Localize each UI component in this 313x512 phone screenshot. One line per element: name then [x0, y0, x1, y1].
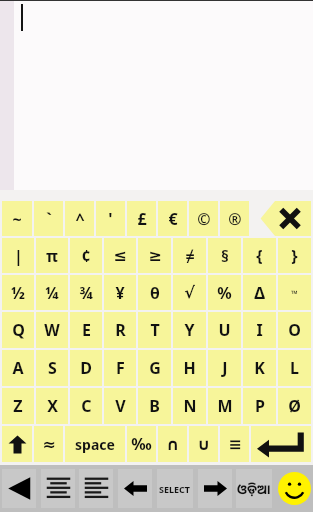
staticText: N: [183, 395, 197, 417]
button[interactable]: ≤: [104, 238, 136, 273]
button[interactable]: ∪: [189, 426, 218, 462]
staticText: J: [222, 357, 228, 379]
button[interactable]: G: [138, 350, 171, 386]
button[interactable]: Emoji: [277, 469, 311, 508]
button[interactable]: ®: [220, 201, 249, 236]
button[interactable]: W: [36, 312, 68, 348]
button[interactable]: §: [208, 238, 241, 273]
button[interactable]: Q: [2, 312, 34, 348]
button[interactable]: H: [173, 350, 206, 386]
button[interactable]: [0, 0, 313, 190]
button[interactable]: ©: [189, 201, 218, 236]
button[interactable]: ^: [65, 201, 94, 236]
button[interactable]: M: [208, 388, 241, 424]
button[interactable]: N: [173, 388, 206, 424]
button[interactable]: ∩: [158, 426, 187, 462]
button[interactable]: C: [70, 388, 102, 424]
button[interactable]: π: [36, 238, 68, 273]
button[interactable]: J: [208, 350, 241, 386]
button[interactable]: `: [34, 201, 63, 236]
staticText: π: [46, 245, 58, 267]
button[interactable]: S: [36, 350, 68, 386]
button[interactable]: ‰: [127, 426, 156, 462]
button[interactable]: ½: [2, 275, 34, 310]
button[interactable]: €: [158, 201, 187, 236]
button[interactable]: V: [104, 388, 136, 424]
button[interactable]: {: [243, 238, 276, 273]
button[interactable]: √: [173, 275, 206, 310]
button[interactable]: Move right: [198, 469, 232, 508]
button[interactable]: ™: [278, 275, 311, 310]
staticText: Q: [12, 319, 25, 341]
button[interactable]: ≡: [220, 426, 249, 462]
staticText: ଓଡ଼ିଆ: [237, 480, 271, 498]
staticText: C: [81, 395, 92, 417]
button[interactable]: ': [96, 201, 125, 236]
staticText: ½: [11, 282, 25, 304]
staticText: SELECT: [159, 483, 191, 495]
staticText: H: [183, 357, 196, 379]
button[interactable]: ¾: [70, 275, 102, 310]
button[interactable]: X: [36, 388, 68, 424]
staticText: ≥: [148, 246, 162, 265]
button[interactable]: L: [278, 350, 311, 386]
button[interactable]: E: [70, 312, 102, 348]
button[interactable]: £: [127, 201, 156, 236]
button[interactable]: K: [243, 350, 276, 386]
button[interactable]: ଓଡ଼ିଆ: [236, 469, 272, 508]
button[interactable]: θ: [138, 275, 171, 310]
staticText: ¢: [81, 245, 91, 267]
button[interactable]: T: [138, 312, 171, 348]
button[interactable]: F: [104, 350, 136, 386]
staticText: U: [218, 319, 231, 341]
staticText: ™: [291, 287, 298, 299]
staticText: V: [115, 395, 126, 417]
button[interactable]: %: [208, 275, 241, 310]
button[interactable]: Previous: [2, 469, 36, 508]
button[interactable]: ≠: [173, 238, 206, 273]
button[interactable]: Left align: [79, 469, 113, 508]
button[interactable]: Delete: [251, 201, 311, 236]
staticText: ≠: [185, 245, 195, 267]
staticText: %: [217, 282, 232, 304]
staticText: F: [116, 357, 125, 379]
button[interactable]: O: [278, 312, 311, 348]
button[interactable]: ¥: [104, 275, 136, 310]
staticText: ¥: [115, 282, 125, 304]
staticText: ®: [228, 208, 242, 230]
staticText: P: [255, 395, 265, 417]
button[interactable]: Ø: [278, 388, 311, 424]
button[interactable]: B: [138, 388, 171, 424]
button[interactable]: space: [65, 426, 125, 462]
button[interactable]: Z: [2, 388, 34, 424]
staticText: L: [290, 357, 299, 379]
button[interactable]: ~: [2, 201, 32, 236]
button[interactable]: SELECT: [157, 469, 193, 508]
button[interactable]: |: [2, 238, 34, 273]
staticText: }: [291, 245, 298, 267]
button[interactable]: U: [208, 312, 241, 348]
button[interactable]: ≥: [138, 238, 171, 273]
button[interactable]: Y: [173, 312, 206, 348]
button[interactable]: P: [243, 388, 276, 424]
button[interactable]: }: [278, 238, 311, 273]
staticText: ‰: [131, 433, 152, 455]
button[interactable]: Δ: [243, 275, 276, 310]
staticText: €: [168, 208, 178, 230]
button[interactable]: D: [70, 350, 102, 386]
button[interactable]: Move left: [118, 469, 152, 508]
button[interactable]: Shift: [2, 426, 32, 462]
staticText: R: [115, 319, 126, 341]
button[interactable]: ¼: [36, 275, 68, 310]
staticText: Δ: [254, 282, 265, 304]
button[interactable]: I: [243, 312, 276, 348]
button[interactable]: A: [2, 350, 34, 386]
button[interactable]: Enter: [251, 426, 311, 462]
button[interactable]: R: [104, 312, 136, 348]
button[interactable]: Center align: [41, 469, 75, 508]
button[interactable]: ≈: [34, 426, 63, 462]
staticText: Y: [184, 319, 195, 341]
staticText: D: [80, 357, 92, 379]
staticText: W: [44, 319, 60, 341]
button[interactable]: ¢: [70, 238, 102, 273]
